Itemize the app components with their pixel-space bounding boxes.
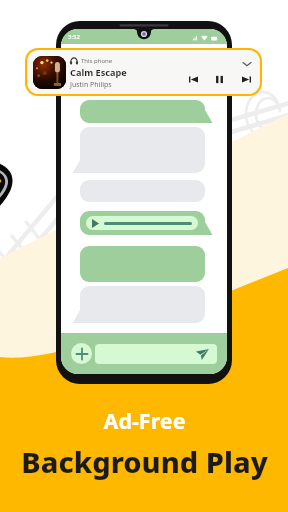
button[interactable] [95, 344, 217, 364]
button[interactable]: Next [239, 72, 254, 87]
staticText: Calm Escape [70, 66, 127, 79]
button[interactable]: Attach [71, 343, 92, 364]
button[interactable]: Pause [212, 72, 227, 87]
staticText: 3:52 [68, 33, 80, 41]
staticText: This phone [81, 57, 113, 65]
button[interactable] [80, 246, 205, 282]
staticText: Ad-Free [103, 406, 186, 435]
button[interactable]: Previous [186, 72, 201, 87]
button[interactable]: Collapse [240, 57, 254, 71]
button[interactable]: This phone [27, 50, 260, 94]
staticText: Justin Philips [70, 80, 112, 90]
staticText: Background Play [21, 442, 268, 481]
button[interactable] [80, 180, 205, 202]
button[interactable] [80, 100, 205, 123]
button[interactable] [80, 211, 205, 235]
